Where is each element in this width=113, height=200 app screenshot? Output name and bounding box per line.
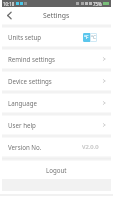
button[interactable]: Device settings: [2, 72, 111, 90]
staticText: Device settings: [8, 77, 52, 85]
staticText: ℃: [91, 34, 96, 41]
button[interactable]: User help: [2, 116, 111, 134]
button[interactable]: Language: [2, 94, 111, 112]
button[interactable]: Version No.: [2, 138, 111, 156]
staticText: 10:18: [3, 1, 15, 7]
button[interactable]: ℉: [83, 33, 97, 42]
staticText: Units setup: [8, 33, 42, 41]
staticText: Version No.: [8, 143, 42, 151]
staticText: 75%: [93, 1, 102, 7]
staticText: V2.0.0: [82, 143, 99, 151]
staticText: ℉: [84, 34, 89, 41]
staticText: Language: [8, 99, 37, 107]
button[interactable]: Remind settings: [2, 50, 111, 68]
staticText: Settings: [43, 11, 70, 20]
staticText: Logout: [46, 166, 67, 174]
button[interactable]: Back: [2, 7, 16, 24]
staticText: User help: [8, 121, 36, 129]
button[interactable]: Logout: [2, 161, 111, 179]
button[interactable]: Units setup: [2, 28, 111, 46]
staticText: Remind settings: [8, 55, 56, 63]
